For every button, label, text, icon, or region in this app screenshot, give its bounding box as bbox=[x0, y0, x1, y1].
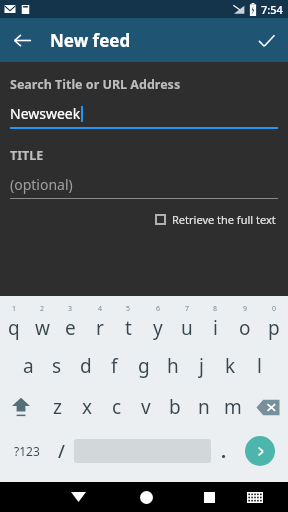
button[interactable]: k bbox=[216, 346, 245, 386]
button[interactable]: . bbox=[211, 428, 236, 474]
button[interactable]: 5 bbox=[114, 298, 143, 346]
button[interactable]: Backspace bbox=[247, 386, 288, 428]
button[interactable]: s bbox=[42, 346, 71, 386]
staticText: c bbox=[112, 394, 122, 420]
staticText: l bbox=[257, 353, 262, 379]
staticText: j bbox=[199, 353, 204, 379]
button[interactable]: 3 bbox=[56, 298, 85, 346]
staticText: Search Title or URL Address bbox=[10, 76, 181, 93]
button[interactable]: l bbox=[245, 346, 274, 386]
staticText: Retrieve the full text bbox=[172, 212, 276, 227]
staticText: ?123 bbox=[14, 443, 40, 459]
staticText: New feed bbox=[50, 29, 131, 52]
button[interactable]: 7 bbox=[172, 298, 201, 346]
button[interactable]: 9 bbox=[230, 298, 259, 346]
button[interactable]: Save bbox=[244, 18, 288, 62]
staticText: n bbox=[198, 394, 210, 420]
button[interactable]: b bbox=[160, 386, 189, 428]
button[interactable]: Shift bbox=[0, 386, 42, 428]
staticText: w bbox=[35, 315, 50, 341]
staticText: 4 bbox=[98, 304, 103, 314]
button[interactable]: 2 bbox=[28, 298, 56, 346]
button[interactable]: 8 bbox=[201, 298, 230, 346]
button[interactable]: a bbox=[14, 346, 42, 386]
staticText: 3 bbox=[68, 304, 73, 314]
button[interactable]: ?123 bbox=[4, 428, 49, 474]
button[interactable]: Recent apps bbox=[187, 482, 232, 512]
staticText: r bbox=[96, 315, 104, 341]
staticText: z bbox=[53, 394, 62, 420]
staticText: (optional) bbox=[10, 175, 73, 194]
button[interactable]: 0 bbox=[259, 298, 288, 346]
button[interactable]: Home bbox=[124, 482, 169, 512]
button[interactable]: / bbox=[49, 428, 74, 474]
staticText: / bbox=[58, 439, 65, 464]
button[interactable]: h bbox=[158, 346, 187, 386]
staticText: v bbox=[141, 394, 151, 420]
staticText: a bbox=[23, 353, 34, 379]
button[interactable]: 6 bbox=[143, 298, 172, 346]
staticText: 1 bbox=[12, 304, 17, 314]
button[interactable]: n bbox=[189, 386, 218, 428]
staticText: e bbox=[65, 315, 76, 341]
button[interactable]: Switch keyboard bbox=[232, 482, 277, 512]
staticText: k bbox=[225, 353, 236, 379]
staticText: Newsweek bbox=[10, 104, 81, 123]
button[interactable]: Retrieve the full text bbox=[153, 209, 278, 230]
staticText: i bbox=[213, 315, 218, 341]
button[interactable]: v bbox=[131, 386, 160, 428]
staticText: s bbox=[52, 353, 62, 379]
staticText: h bbox=[167, 353, 179, 379]
staticText: o bbox=[239, 315, 251, 341]
button[interactable]: c bbox=[102, 386, 131, 428]
staticText: d bbox=[80, 353, 92, 379]
staticText: u bbox=[181, 315, 193, 341]
staticText: 5 bbox=[126, 304, 131, 314]
button[interactable]: z bbox=[42, 386, 72, 428]
staticText: x bbox=[82, 394, 93, 420]
button[interactable]: Enter bbox=[236, 428, 284, 474]
button[interactable]: f bbox=[100, 346, 129, 386]
staticText: 8 bbox=[213, 304, 218, 314]
staticText: 6 bbox=[156, 304, 161, 314]
button[interactable]: Hide keyboard bbox=[55, 482, 101, 512]
staticText: f bbox=[111, 353, 118, 379]
staticText: 7:54 bbox=[261, 2, 283, 17]
staticText: TITLE bbox=[10, 147, 44, 164]
staticText: t bbox=[125, 315, 132, 341]
staticText: 7 bbox=[185, 304, 190, 314]
button[interactable]: Back bbox=[0, 18, 44, 62]
staticText: g bbox=[138, 353, 150, 379]
staticText: p bbox=[268, 315, 280, 341]
button[interactable]: x bbox=[72, 386, 102, 428]
button[interactable]: 1 bbox=[0, 298, 28, 346]
staticText: y bbox=[153, 315, 163, 341]
staticText: 9 bbox=[243, 304, 248, 314]
button[interactable]: 4 bbox=[85, 298, 114, 346]
staticText: 2 bbox=[40, 304, 45, 314]
staticText: q bbox=[8, 315, 20, 341]
staticText: m bbox=[224, 394, 242, 420]
staticText: . bbox=[221, 439, 227, 464]
button[interactable]: j bbox=[187, 346, 216, 386]
button[interactable]: m bbox=[218, 386, 247, 428]
button[interactable]: g bbox=[129, 346, 158, 386]
button[interactable]: d bbox=[71, 346, 100, 386]
staticText: b bbox=[169, 394, 181, 420]
staticText: 0 bbox=[272, 304, 277, 314]
